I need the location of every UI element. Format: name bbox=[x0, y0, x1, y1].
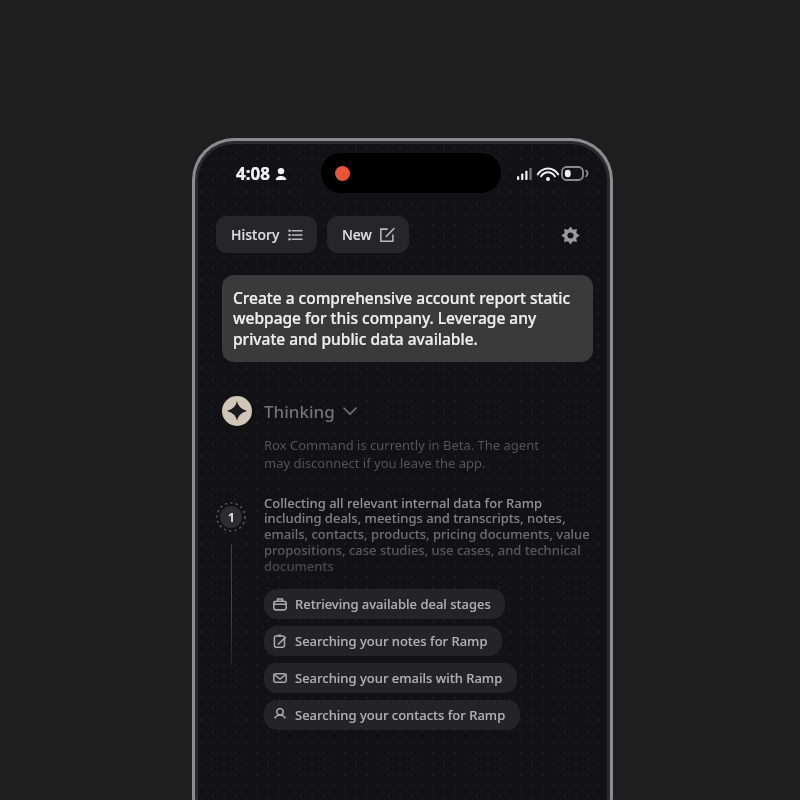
button[interactable]: Retrieving available deal stages bbox=[264, 589, 505, 619]
staticText: Retrieving available deal stages bbox=[295, 595, 491, 613]
button[interactable]: Searching your emails with Ramp bbox=[264, 663, 517, 693]
staticText: Rox Command is currently in Beta. The ag… bbox=[264, 436, 567, 472]
staticText: Thinking bbox=[264, 400, 335, 423]
button[interactable]: Thinking bbox=[222, 396, 607, 426]
button[interactable]: History bbox=[216, 216, 317, 253]
staticText: New bbox=[342, 225, 372, 244]
button[interactable]: New bbox=[327, 216, 409, 253]
button[interactable]: Searching your contacts for Ramp bbox=[264, 700, 520, 730]
staticText: Create a comprehensive account report st… bbox=[233, 287, 582, 350]
staticText: History bbox=[231, 225, 280, 244]
staticText: 1 bbox=[228, 509, 235, 525]
button[interactable]: Searching your notes for Ramp bbox=[264, 626, 502, 656]
staticText: Searching your contacts for Ramp bbox=[295, 706, 506, 724]
staticText: Searching your notes for Ramp bbox=[295, 632, 488, 650]
button[interactable]: Settings bbox=[553, 218, 587, 252]
staticText: 4:08 bbox=[236, 162, 270, 185]
button[interactable]: Create a comprehensive account report st… bbox=[222, 275, 593, 362]
staticText: Collecting all relevant internal data fo… bbox=[264, 494, 597, 575]
staticText: Searching your emails with Ramp bbox=[295, 669, 503, 687]
